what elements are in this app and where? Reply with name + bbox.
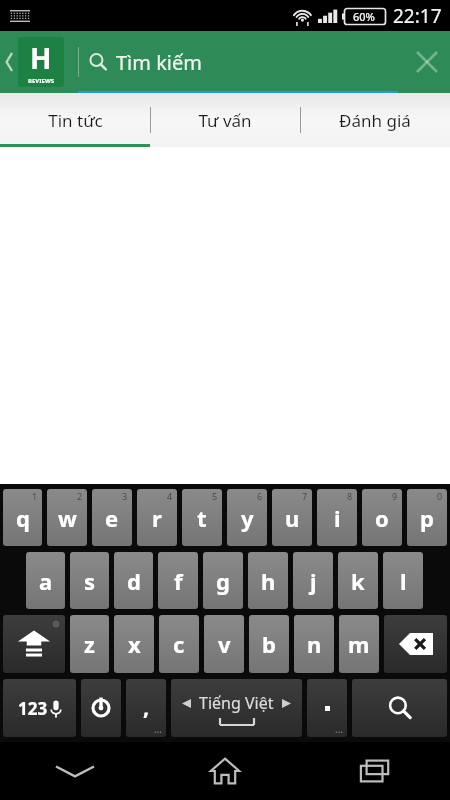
button[interactable]: n bbox=[294, 615, 334, 673]
button[interactable]: Recent apps bbox=[300, 742, 450, 800]
staticText: 123 bbox=[18, 697, 48, 720]
staticText: o bbox=[375, 503, 389, 533]
staticText: REVIEWS bbox=[28, 77, 54, 85]
button[interactable]: y bbox=[227, 489, 267, 546]
button[interactable]: c bbox=[159, 615, 199, 673]
button[interactable]: f bbox=[158, 552, 198, 609]
button[interactable]: Comma bbox=[126, 679, 166, 737]
staticText: 6 bbox=[257, 490, 263, 502]
button[interactable]: o bbox=[362, 489, 402, 546]
staticText: h bbox=[261, 566, 276, 596]
button[interactable]: h bbox=[248, 552, 288, 609]
staticText: q bbox=[16, 503, 30, 533]
staticText: x bbox=[128, 629, 141, 659]
staticText: m bbox=[348, 629, 370, 659]
staticText: Tìm kiếm bbox=[116, 49, 202, 76]
staticText: 3 bbox=[122, 490, 128, 502]
staticText: ... bbox=[154, 722, 163, 736]
staticText: u bbox=[285, 503, 300, 533]
staticText: j bbox=[310, 566, 317, 596]
staticText: Đánh giá bbox=[339, 109, 411, 132]
button[interactable]: v bbox=[204, 615, 244, 673]
button[interactable]: s bbox=[70, 552, 109, 609]
button[interactable]: a bbox=[26, 552, 65, 609]
staticText: s bbox=[84, 566, 96, 596]
button[interactable]: Back bbox=[0, 31, 18, 93]
staticText: a bbox=[39, 566, 53, 596]
button[interactable]: Tin tức bbox=[0, 93, 150, 147]
staticText: b bbox=[262, 629, 276, 659]
button[interactable]: d bbox=[114, 552, 153, 609]
button[interactable]: z bbox=[70, 615, 109, 673]
button[interactable]: u bbox=[272, 489, 312, 546]
staticText: , bbox=[143, 691, 150, 721]
staticText: f bbox=[174, 566, 183, 596]
staticText: e bbox=[105, 503, 119, 533]
staticText: k bbox=[351, 566, 365, 596]
button[interactable]: k bbox=[338, 552, 378, 609]
staticText: t bbox=[197, 503, 207, 533]
staticText: p bbox=[420, 503, 434, 533]
button[interactable]: e bbox=[92, 489, 132, 546]
staticText: d bbox=[127, 566, 141, 596]
staticText: n bbox=[307, 629, 322, 659]
button[interactable]: Đánh giá bbox=[300, 93, 450, 147]
button[interactable]: Tìm kiếm bbox=[78, 31, 398, 93]
button[interactable]: r bbox=[137, 489, 177, 546]
staticText: 5 bbox=[212, 490, 218, 502]
staticText: w bbox=[58, 503, 77, 533]
staticText: 8 bbox=[347, 490, 353, 502]
button[interactable]: Keyboard settings bbox=[81, 679, 121, 737]
staticText: 60% bbox=[353, 9, 375, 24]
staticText: 2 bbox=[77, 490, 83, 502]
staticText: v bbox=[218, 629, 231, 659]
staticText: z bbox=[84, 629, 95, 659]
staticText: c bbox=[173, 629, 185, 659]
staticText: g bbox=[216, 566, 230, 596]
button[interactable]: g bbox=[203, 552, 243, 609]
staticText: ... bbox=[335, 722, 344, 736]
button[interactable]: b bbox=[249, 615, 289, 673]
button[interactable]: j bbox=[293, 552, 333, 609]
staticText: Tin tức bbox=[48, 109, 103, 132]
button[interactable]: Clear search bbox=[404, 31, 450, 93]
button[interactable]: w bbox=[47, 489, 87, 546]
button[interactable]: Home bbox=[150, 742, 300, 800]
button[interactable]: m bbox=[339, 615, 379, 673]
button[interactable]: Backspace bbox=[384, 615, 447, 673]
button[interactable]: Space, Tiếng Việt bbox=[171, 679, 302, 737]
button[interactable]: t bbox=[182, 489, 222, 546]
staticText: Tiếng Việt bbox=[199, 692, 274, 714]
button[interactable]: i bbox=[317, 489, 357, 546]
button[interactable]: l bbox=[383, 552, 423, 609]
button[interactable]: Hide keyboard bbox=[0, 742, 150, 800]
button[interactable]: H Reviews logo bbox=[18, 37, 64, 87]
button[interactable]: Period bbox=[307, 679, 347, 737]
staticText: i bbox=[334, 503, 341, 533]
button[interactable]: q bbox=[3, 489, 42, 546]
button[interactable]: p bbox=[407, 489, 447, 546]
button[interactable]: x bbox=[114, 615, 154, 673]
staticText: H bbox=[30, 39, 52, 77]
staticText: 22:17 bbox=[393, 3, 442, 29]
button[interactable]: Numbers and voice input bbox=[3, 679, 76, 737]
staticText: l bbox=[400, 566, 407, 596]
staticText: y bbox=[241, 503, 254, 533]
button[interactable]: Shift bbox=[3, 615, 65, 673]
staticText: r bbox=[152, 503, 162, 533]
staticText: Tư vấn bbox=[198, 109, 252, 132]
button[interactable]: Tư vấn bbox=[150, 93, 300, 147]
staticText: 7 bbox=[302, 490, 308, 502]
staticText: 9 bbox=[392, 490, 398, 502]
staticText: 1 bbox=[32, 490, 38, 502]
button[interactable]: Search bbox=[352, 679, 447, 737]
staticText: 4 bbox=[167, 490, 173, 502]
staticText: 0 bbox=[437, 490, 443, 502]
